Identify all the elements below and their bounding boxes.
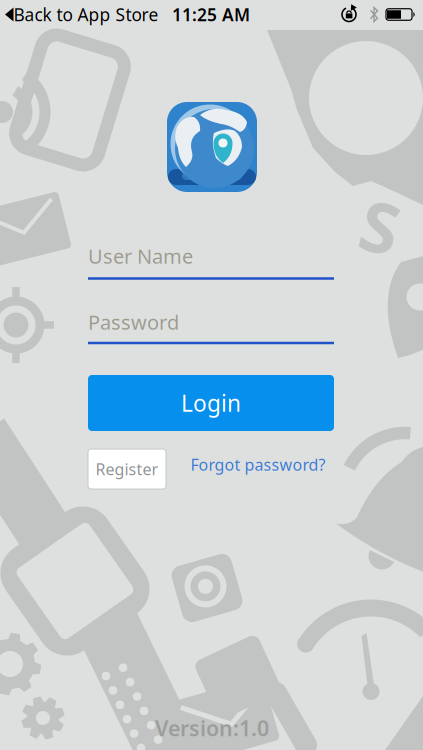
staticText: Version:1.0 [155, 714, 269, 742]
button[interactable]: Back to App Store [13, 3, 158, 26]
staticText: Register [95, 458, 158, 480]
staticText: Back to App Store [13, 3, 158, 26]
button[interactable]: Register [88, 449, 166, 489]
staticText: Forgot password? [190, 454, 325, 475]
button[interactable]: Forgot password? [190, 454, 325, 475]
staticText: S [361, 180, 399, 272]
button[interactable]: Login [88, 375, 334, 431]
staticText: Password [88, 309, 179, 335]
staticText: 11:25 AM [172, 3, 250, 26]
staticText: Login [181, 388, 241, 418]
textField[interactable]: User Name [88, 243, 334, 269]
textField[interactable]: Password [88, 309, 334, 335]
staticText: User Name [88, 243, 193, 269]
